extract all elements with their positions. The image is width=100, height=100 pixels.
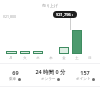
staticText: 日 [88,56,92,60]
button[interactable] [59,47,69,54]
staticText: ¥21,796 › [56,12,74,17]
staticText: 69 [12,69,19,76]
staticText: 24 時間 0 分 [35,68,66,76]
staticText: 金 [62,56,66,60]
staticText: 土 [75,56,79,60]
staticText: 乗車 [9,77,17,82]
button[interactable]: ¥21,796 › [53,11,77,18]
button[interactable] [20,51,30,54]
staticText: 火 [23,56,27,60]
staticText: 木 [49,56,53,60]
staticText: 売り上げ [42,3,59,8]
staticText: オンラー [41,77,56,82]
button[interactable]: 157 [70,64,100,86]
staticText: 月 [9,56,13,60]
button[interactable] [6,51,17,54]
staticText: ¥21,800 [3,14,16,19]
button[interactable] [33,51,43,54]
staticText: ポイント [76,77,91,82]
button[interactable]: 69 [0,64,30,86]
button[interactable]: 24 時間 0 分 [30,64,70,86]
button[interactable] [72,30,82,54]
staticText: 水 [36,56,40,60]
staticText: 157 [80,69,90,76]
